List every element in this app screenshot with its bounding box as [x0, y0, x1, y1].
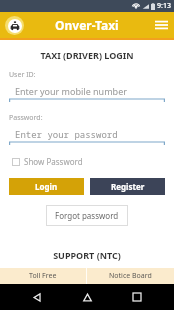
button[interactable]: Menu — [148, 12, 174, 38]
button[interactable]: Enter your password — [9, 126, 165, 145]
button[interactable]: Login — [9, 178, 84, 195]
staticText: 9:13 — [157, 1, 171, 11]
staticText: Forgot password — [55, 210, 119, 221]
button[interactable]: Toll Free — [0, 268, 86, 284]
staticText: Register — [111, 181, 145, 192]
staticText: Onver-Taxi — [55, 17, 119, 33]
staticText: TAXI (DRIVER) LOGIN — [0, 49, 174, 61]
button[interactable]: Forgot password — [46, 205, 128, 226]
button[interactable]: Home — [74, 284, 100, 310]
button[interactable]: Show Password — [11, 154, 84, 169]
button[interactable]: Notice Board — [87, 268, 174, 284]
button[interactable]: Register — [90, 178, 165, 195]
button[interactable]: Enter your mobile number — [9, 83, 165, 102]
button[interactable]: Recent apps — [124, 284, 150, 310]
staticText: Show Password — [24, 156, 83, 167]
staticText: Enter your mobile number — [15, 85, 127, 97]
staticText: Notice Board — [109, 271, 152, 281]
button[interactable]: Back — [24, 284, 50, 310]
staticText: SUPPORT (NTC) — [0, 249, 174, 261]
staticText: Password: — [9, 113, 43, 123]
button[interactable]: App logo — [5, 16, 24, 35]
staticText: Login — [35, 181, 58, 192]
staticText: Toll Free — [29, 271, 57, 281]
staticText: Enter your password — [15, 128, 118, 140]
staticText: User ID: — [9, 70, 36, 80]
